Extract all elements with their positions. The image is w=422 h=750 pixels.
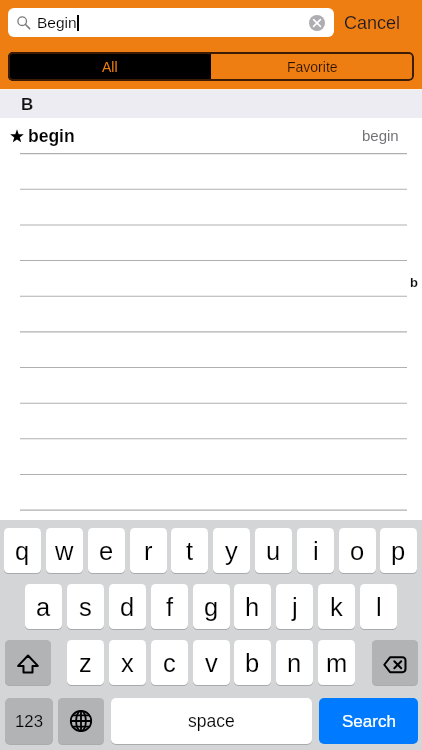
staticText: t [186,537,194,565]
staticText: q [15,537,30,565]
staticText: f [166,593,174,621]
button[interactable]: o [339,528,376,573]
staticText: y [225,537,238,565]
staticText: B [21,95,34,114]
button[interactable]: i [297,528,334,573]
staticText: m [326,649,348,677]
button[interactable]: l [360,584,397,629]
staticText: g [204,593,219,621]
button[interactable]: w [46,528,83,573]
staticText: o [350,537,365,565]
button[interactable]: All [8,52,211,81]
staticText: Begin [37,14,77,31]
staticText: Cancel [344,13,401,33]
button[interactable]: begin [0,118,422,153]
staticText: s [79,593,92,621]
button[interactable]: 123 [5,698,53,744]
button[interactable]: v [193,640,230,685]
staticText: b [245,649,260,677]
button[interactable]: Search [319,698,418,744]
button[interactable]: j [276,584,313,629]
button[interactable]: e [88,528,125,573]
staticText: j [292,593,298,621]
staticText: l [376,593,382,621]
staticText: begin [362,127,399,144]
staticText: h [245,593,260,621]
staticText: n [287,649,302,677]
button[interactable]: Cancel [335,5,409,40]
staticText: a [36,593,51,621]
staticText: d [120,593,135,621]
button[interactable]: r [130,528,167,573]
button[interactable]: h [234,584,271,629]
staticText: space [188,711,235,731]
staticText: x [121,649,134,677]
staticText: w [55,537,74,565]
button[interactable]: d [109,584,146,629]
staticText: c [163,649,176,677]
button[interactable]: g [193,584,230,629]
button[interactable]: z [67,640,104,685]
button[interactable]: y [213,528,250,573]
staticText: Search [342,712,396,731]
button[interactable]: Begin [8,8,334,37]
button[interactable]: Shift [5,640,51,685]
staticText: All [102,59,118,75]
button[interactable]: a [25,584,62,629]
staticText: i [313,537,319,565]
button[interactable]: space [111,698,312,744]
button[interactable]: f [151,584,188,629]
staticText: p [391,537,406,565]
staticText: u [266,537,281,565]
staticText: 123 [15,712,44,731]
button[interactable]: Backspace [372,640,418,685]
button[interactable]: b [234,640,271,685]
staticText: b [410,275,418,290]
button[interactable]: n [276,640,313,685]
staticText: begin [28,126,75,146]
staticText: r [144,537,153,565]
staticText: k [330,593,343,621]
staticText: Favorite [287,59,338,75]
button[interactable]: c [151,640,188,685]
button[interactable]: s [67,584,104,629]
button[interactable]: q [4,528,41,573]
staticText: z [79,649,92,677]
button[interactable]: k [318,584,355,629]
button[interactable]: p [380,528,417,573]
button[interactable]: x [109,640,146,685]
button[interactable]: Favorite [211,52,414,81]
button[interactable]: t [171,528,208,573]
staticText: e [99,537,114,565]
button[interactable]: Change keyboard [58,698,104,744]
button[interactable]: m [318,640,355,685]
button[interactable]: u [255,528,292,573]
staticText: v [205,649,218,677]
